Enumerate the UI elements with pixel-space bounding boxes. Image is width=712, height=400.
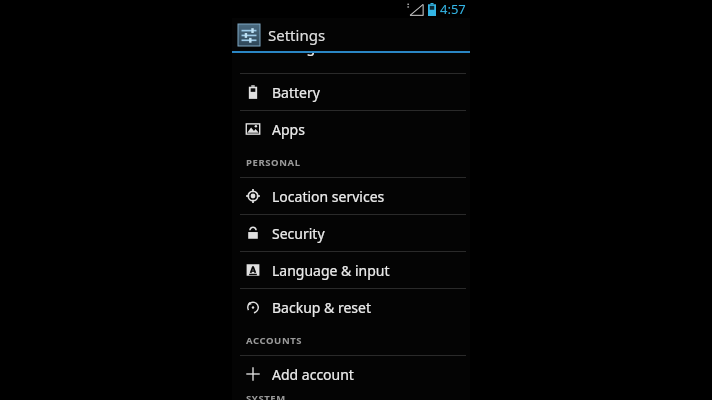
staticText: Battery — [272, 83, 320, 102]
staticText: Settings — [268, 25, 326, 45]
button[interactable]: Security — [232, 215, 470, 251]
button[interactable]: Add account — [232, 356, 470, 392]
button[interactable]: Backup & reset — [232, 289, 470, 325]
button[interactable]: Battery — [232, 74, 470, 110]
button[interactable]: Settings — [232, 18, 470, 51]
button[interactable]: Language & input — [232, 252, 470, 288]
staticText: Location services — [272, 187, 385, 206]
button[interactable]: Location services — [232, 178, 470, 214]
staticText: SYSTEM — [246, 392, 286, 400]
staticText: Storage — [272, 53, 324, 56]
staticText: PERSONAL — [246, 156, 301, 169]
staticText: ACCOUNTS — [246, 334, 303, 347]
staticText: Language & input — [272, 261, 390, 280]
staticText: Security — [272, 224, 325, 243]
staticText: 4:57 — [440, 0, 466, 18]
staticText: Backup & reset — [272, 298, 371, 317]
staticText: Add account — [272, 365, 354, 384]
staticText: Apps — [272, 120, 305, 139]
button[interactable]: Apps — [232, 111, 470, 147]
button[interactable]: Storage — [232, 53, 470, 56]
